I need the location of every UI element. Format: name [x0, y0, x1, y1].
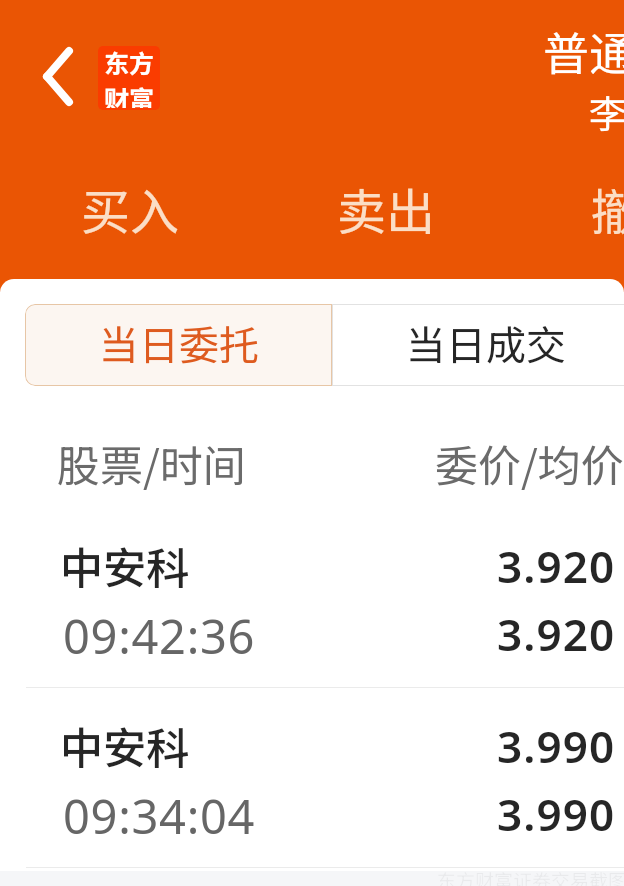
- button[interactable]: East Money home: [98, 46, 160, 110]
- button[interactable]: 卖出: [321, 163, 452, 254]
- staticText: 09:34:04: [63, 784, 256, 848]
- staticText: 3.920: [497, 536, 616, 596]
- staticText: 当日委托: [99, 314, 259, 372]
- staticText: 委价/均价: [435, 432, 624, 494]
- staticText: 普通账户: [543, 18, 624, 85]
- staticText: 中安科: [60, 534, 189, 596]
- button[interactable]: 普通账户: [543, 18, 624, 85]
- staticText: 东方财富证券交易截图: [437, 866, 624, 886]
- staticText: 中安科: [60, 714, 189, 776]
- staticText: 卖出: [337, 173, 436, 244]
- button[interactable]: 中安科: [0, 520, 624, 687]
- button[interactable]: Back: [22, 40, 94, 112]
- button[interactable]: 当日委托: [25, 304, 332, 386]
- button[interactable]: 当日成交: [332, 304, 624, 386]
- staticText: 财富: [104, 80, 155, 108]
- staticText: 当日成交: [406, 314, 566, 372]
- staticText: 3.990: [497, 784, 616, 844]
- button[interactable]: 中安科: [0, 700, 624, 867]
- staticText: 撤单: [591, 173, 624, 244]
- staticText: 3.920: [497, 604, 616, 664]
- staticText: 股票/时间: [57, 432, 246, 494]
- button[interactable]: 撤单: [575, 163, 624, 254]
- staticText: 3.990: [497, 716, 616, 776]
- staticText: 李**: [589, 84, 624, 139]
- staticText: 09:42:36: [63, 604, 256, 668]
- button[interactable]: 买入: [65, 163, 196, 254]
- staticText: 东方: [104, 46, 155, 80]
- staticText: 买入: [81, 173, 180, 244]
